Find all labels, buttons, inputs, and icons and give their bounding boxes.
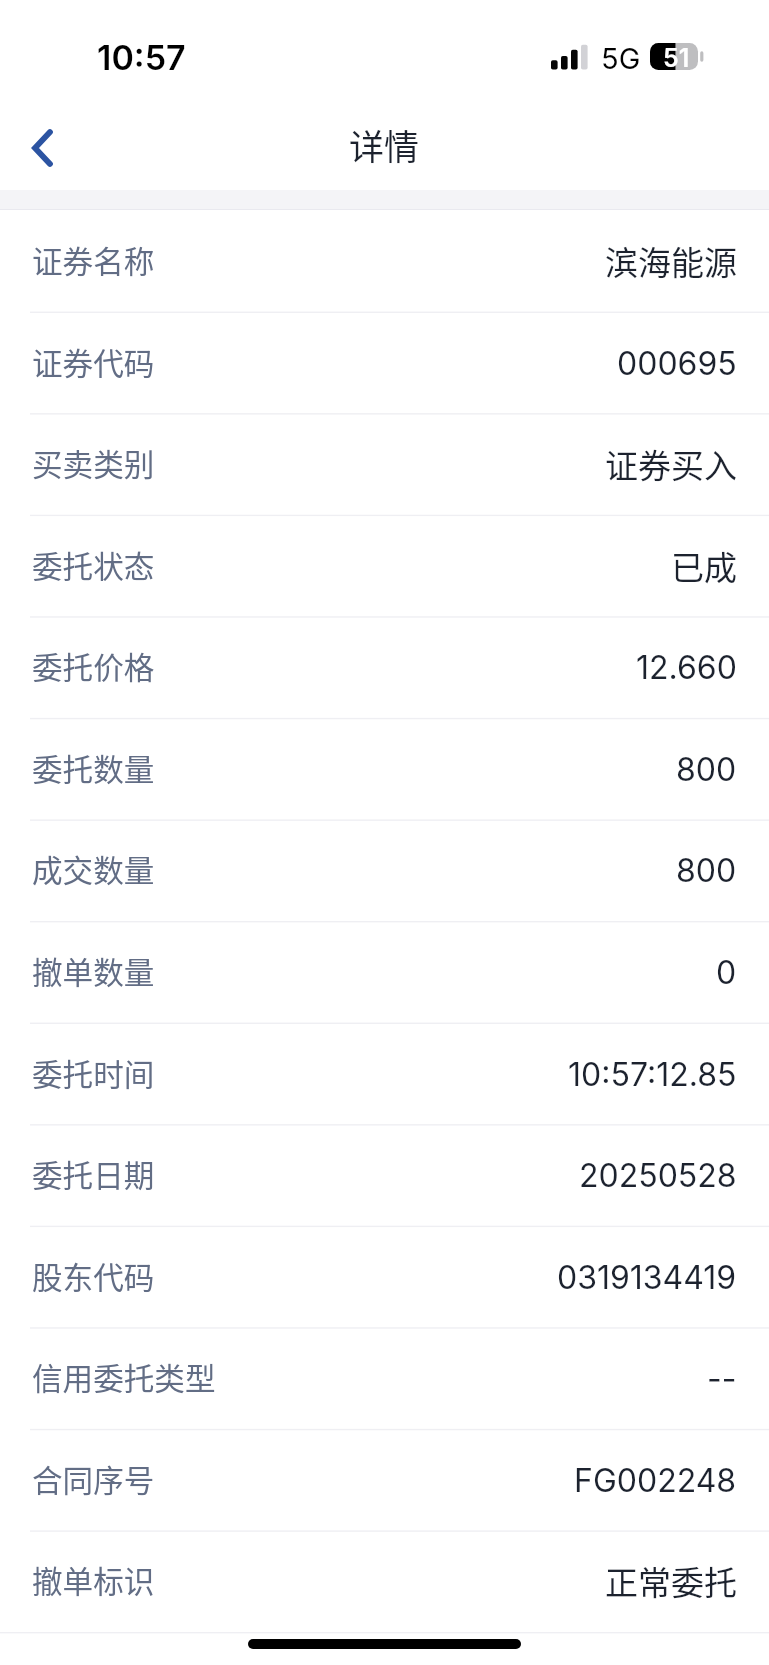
staticText: 已成 — [671, 542, 737, 590]
staticText: 委托状态 — [32, 543, 155, 587]
staticText: 证券代码 — [32, 340, 155, 384]
button[interactable]: 合同序号 — [0, 1429, 769, 1531]
staticText: 800 — [676, 750, 737, 789]
button[interactable]: 委托日期 — [0, 1124, 769, 1226]
button[interactable]: 撤单数量 — [0, 921, 769, 1023]
staticText: 滨海能源 — [605, 237, 737, 285]
button[interactable]: 信用委托类型 — [0, 1327, 769, 1429]
button[interactable]: 成交数量 — [0, 819, 769, 921]
staticText: FG002248 — [574, 1461, 737, 1500]
staticText: 0 — [716, 953, 737, 992]
staticText: 12.660 — [636, 648, 737, 687]
button[interactable]: 撤单标识 — [0, 1530, 769, 1632]
staticText: -- — [707, 1359, 737, 1398]
button[interactable]: 股东代码 — [0, 1226, 769, 1328]
staticText: 委托时间 — [32, 1051, 155, 1095]
button[interactable]: 买卖类别 — [0, 413, 769, 515]
staticText: 证券名称 — [32, 238, 155, 282]
staticText: 撤单标识 — [32, 1558, 155, 1602]
staticText: 800 — [676, 851, 737, 890]
staticText: 证券买入 — [605, 440, 737, 488]
staticText: 5G — [601, 41, 641, 76]
button[interactable]: Back — [6, 111, 79, 184]
staticText: 信用委托类型 — [32, 1355, 216, 1399]
button[interactable]: 证券代码 — [0, 312, 769, 414]
button[interactable]: 委托价格 — [0, 616, 769, 718]
staticText: 000695 — [617, 344, 737, 383]
staticText: 51 — [663, 43, 690, 70]
staticText: 20250528 — [579, 1156, 737, 1195]
staticText: 合同序号 — [32, 1457, 155, 1501]
button[interactable]: 委托时间 — [0, 1023, 769, 1125]
button[interactable]: 证券名称 — [0, 210, 769, 312]
staticText: 10:57:12.85 — [568, 1055, 737, 1094]
staticText: 正常委托 — [605, 1557, 737, 1605]
button[interactable]: 委托数量 — [0, 718, 769, 820]
staticText: 0319134419 — [557, 1258, 737, 1297]
staticText: 股东代码 — [32, 1254, 155, 1298]
staticText: 委托日期 — [32, 1152, 155, 1196]
staticText: 委托数量 — [32, 746, 155, 790]
staticText: 详情 — [349, 119, 420, 170]
button[interactable]: 委托状态 — [0, 515, 769, 617]
staticText: 成交数量 — [32, 847, 155, 891]
staticText: 10:57 — [97, 37, 186, 78]
staticText: 委托价格 — [32, 644, 155, 688]
staticText: 撤单数量 — [32, 949, 155, 993]
staticText: 买卖类别 — [32, 441, 155, 485]
